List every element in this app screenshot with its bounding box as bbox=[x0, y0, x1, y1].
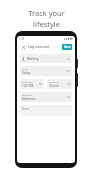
staticText: Date bbox=[22, 67, 28, 70]
button[interactable]: Save bbox=[62, 44, 72, 50]
button[interactable]: Date bbox=[20, 66, 72, 76]
staticText: Save bbox=[64, 45, 71, 49]
button[interactable]: Notes bbox=[20, 105, 72, 116]
staticText: Log exercise bbox=[28, 44, 50, 49]
staticText: Intensity bbox=[22, 93, 32, 96]
staticText: 30 min bbox=[49, 84, 59, 88]
staticText: Notes bbox=[22, 107, 30, 111]
staticText: 1:38 bbox=[19, 37, 25, 41]
staticText: Duration bbox=[49, 80, 59, 83]
button[interactable]: Close bbox=[20, 44, 26, 50]
button[interactable]: Start time bbox=[20, 79, 44, 89]
staticText: Walking bbox=[27, 57, 39, 61]
staticText: lifestyle bbox=[33, 19, 60, 29]
staticText: Moderate bbox=[22, 97, 36, 101]
button[interactable]: Duration bbox=[47, 79, 72, 89]
button[interactable]: Intensity bbox=[20, 92, 72, 102]
staticText: Start time bbox=[22, 80, 34, 83]
staticText: Today bbox=[22, 71, 31, 75]
staticText: Track your bbox=[28, 8, 65, 18]
staticText: 1:00 PM bbox=[22, 84, 34, 88]
button[interactable]: Walking bbox=[20, 54, 72, 63]
